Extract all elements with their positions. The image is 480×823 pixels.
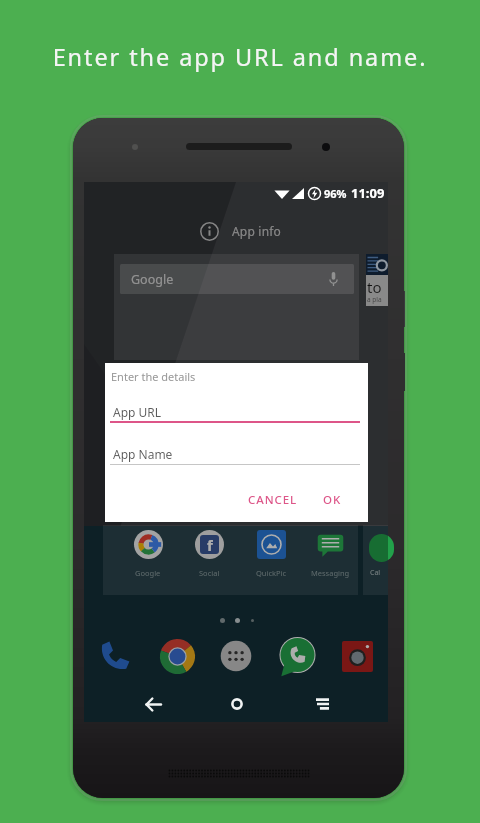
button[interactable]: Recents (304, 686, 340, 722)
staticText: OK (323, 492, 342, 508)
staticText: top (367, 277, 388, 297)
button[interactable]: Home (219, 686, 255, 722)
staticText: Google (131, 271, 174, 288)
staticText: Messaging (311, 568, 350, 578)
staticText: Google (135, 568, 161, 578)
button[interactable]: Chrome (156, 635, 198, 677)
button[interactable]: CANCEL (248, 492, 298, 508)
staticText: QuickPic (256, 568, 287, 578)
button[interactable]: Back (135, 686, 171, 722)
staticText: App URL (113, 404, 162, 420)
button[interactable]: Google (118, 530, 178, 578)
staticText: 11:09 (351, 184, 385, 202)
button[interactable]: QuickPic (241, 530, 301, 578)
button[interactable]: Messaging (300, 530, 360, 578)
button[interactable]: Phone (94, 635, 136, 677)
staticText: Cal (370, 568, 381, 578)
button[interactable]: WhatsApp (276, 635, 318, 677)
staticText: CANCEL (248, 492, 298, 508)
button[interactable]: f (179, 530, 239, 578)
button[interactable]: App info (232, 223, 282, 239)
button[interactable]: Google (120, 264, 354, 294)
button[interactable]: Camera (336, 635, 378, 677)
staticText: a pla (367, 295, 382, 304)
staticText: 96% (324, 186, 347, 201)
button[interactable]: All apps (215, 635, 257, 677)
staticText: f (207, 535, 213, 554)
staticText: Enter the app URL and name. (0, 41, 480, 73)
button[interactable]: App info (200, 222, 219, 241)
staticText: App Name (113, 446, 173, 462)
button[interactable]: OK (323, 492, 342, 508)
staticText: Social (199, 568, 220, 578)
staticText: Enter the details (111, 369, 196, 384)
